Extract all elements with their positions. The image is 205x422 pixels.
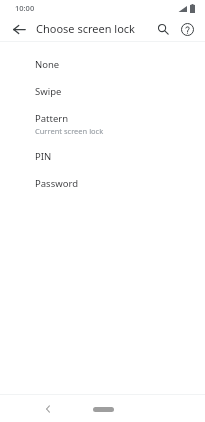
button[interactable]: Back [7,17,31,41]
button[interactable]: Swipe [0,78,205,105]
button[interactable]: Back [37,398,59,420]
button[interactable]: None [0,51,205,78]
button[interactable]: Pattern [0,105,205,143]
button[interactable]: Home [83,400,123,418]
button[interactable]: Help [175,17,199,41]
staticText: 10:00 [15,3,35,13]
button[interactable]: PIN [0,143,205,170]
button[interactable]: Password [0,170,205,197]
staticText: PIN [35,150,52,163]
staticText: Current screen lock [35,126,104,136]
staticText: Password [35,177,78,190]
staticText: None [35,58,60,71]
staticText: Swipe [35,85,62,98]
staticText: Choose screen lock [36,21,135,36]
button[interactable]: Search [151,17,175,41]
staticText: Pattern [35,112,69,125]
